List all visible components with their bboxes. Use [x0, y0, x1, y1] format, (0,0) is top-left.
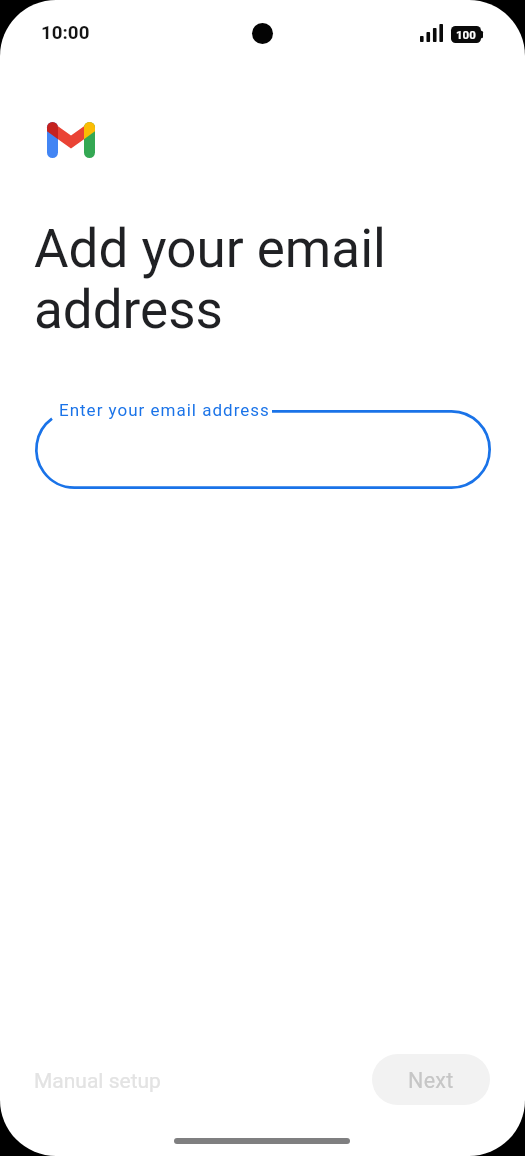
staticText: 100	[456, 28, 476, 41]
staticText: Enter your email address	[59, 400, 270, 420]
staticText: Add your email address	[34, 218, 386, 341]
button[interactable]: Manual setup	[22, 1058, 173, 1105]
staticText: Next	[408, 1068, 454, 1093]
button[interactable]: Enter your email address	[35, 399, 491, 489]
staticText: Manual setup	[34, 1069, 161, 1094]
button[interactable]: Next	[372, 1054, 490, 1105]
other: Gmail	[47, 122, 95, 158]
staticText: 10:00	[41, 22, 90, 44]
